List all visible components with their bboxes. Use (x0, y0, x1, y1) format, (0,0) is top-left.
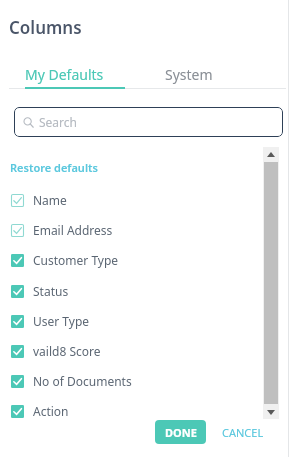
button[interactable]: Scroll down (263, 405, 279, 419)
button[interactable]: Search (14, 107, 283, 137)
staticText: Name (33, 192, 67, 208)
button[interactable]: Checkbox (6, 218, 256, 242)
staticText: Email Address (33, 222, 113, 238)
button[interactable]: Checkbox (6, 369, 256, 393)
other: Checkbox (11, 345, 24, 358)
staticText: Search (39, 114, 77, 130)
staticText: Customer Type (33, 252, 119, 268)
staticText: Restore defaults (10, 160, 98, 175)
staticText: Columns (9, 16, 82, 39)
staticText: DONE (165, 425, 197, 440)
staticText: User Type (33, 313, 90, 329)
button[interactable]: System (158, 62, 220, 87)
button[interactable]: CANCEL (219, 420, 267, 444)
button[interactable]: Checkbox (6, 188, 256, 212)
staticText: Status (33, 283, 69, 299)
other: Checkbox (11, 315, 24, 328)
staticText: Action (33, 403, 69, 419)
staticText: No of Documents (33, 373, 132, 389)
other: Checkbox (11, 224, 24, 237)
staticText: vaild8 Score (33, 343, 101, 359)
other: Checkbox (11, 194, 24, 207)
button[interactable]: DONE (155, 420, 206, 444)
other: Checkbox (11, 285, 24, 298)
button[interactable]: Checkbox (6, 309, 256, 333)
button[interactable]: Checkbox (6, 399, 256, 423)
button[interactable]: Restore defaults (8, 158, 100, 177)
button[interactable]: Scroll up (263, 147, 279, 161)
button[interactable]: Checkbox (6, 248, 256, 272)
staticText: CANCEL (222, 425, 264, 440)
other: Checkbox (11, 375, 24, 388)
staticText: System (165, 65, 213, 84)
other: Checkbox (11, 405, 24, 418)
button[interactable]: My Defaults (18, 62, 111, 87)
button[interactable]: Checkbox (6, 339, 256, 363)
button[interactable]: Checkbox (6, 279, 256, 303)
staticText: My Defaults (25, 65, 104, 84)
other: Checkbox (11, 254, 24, 267)
